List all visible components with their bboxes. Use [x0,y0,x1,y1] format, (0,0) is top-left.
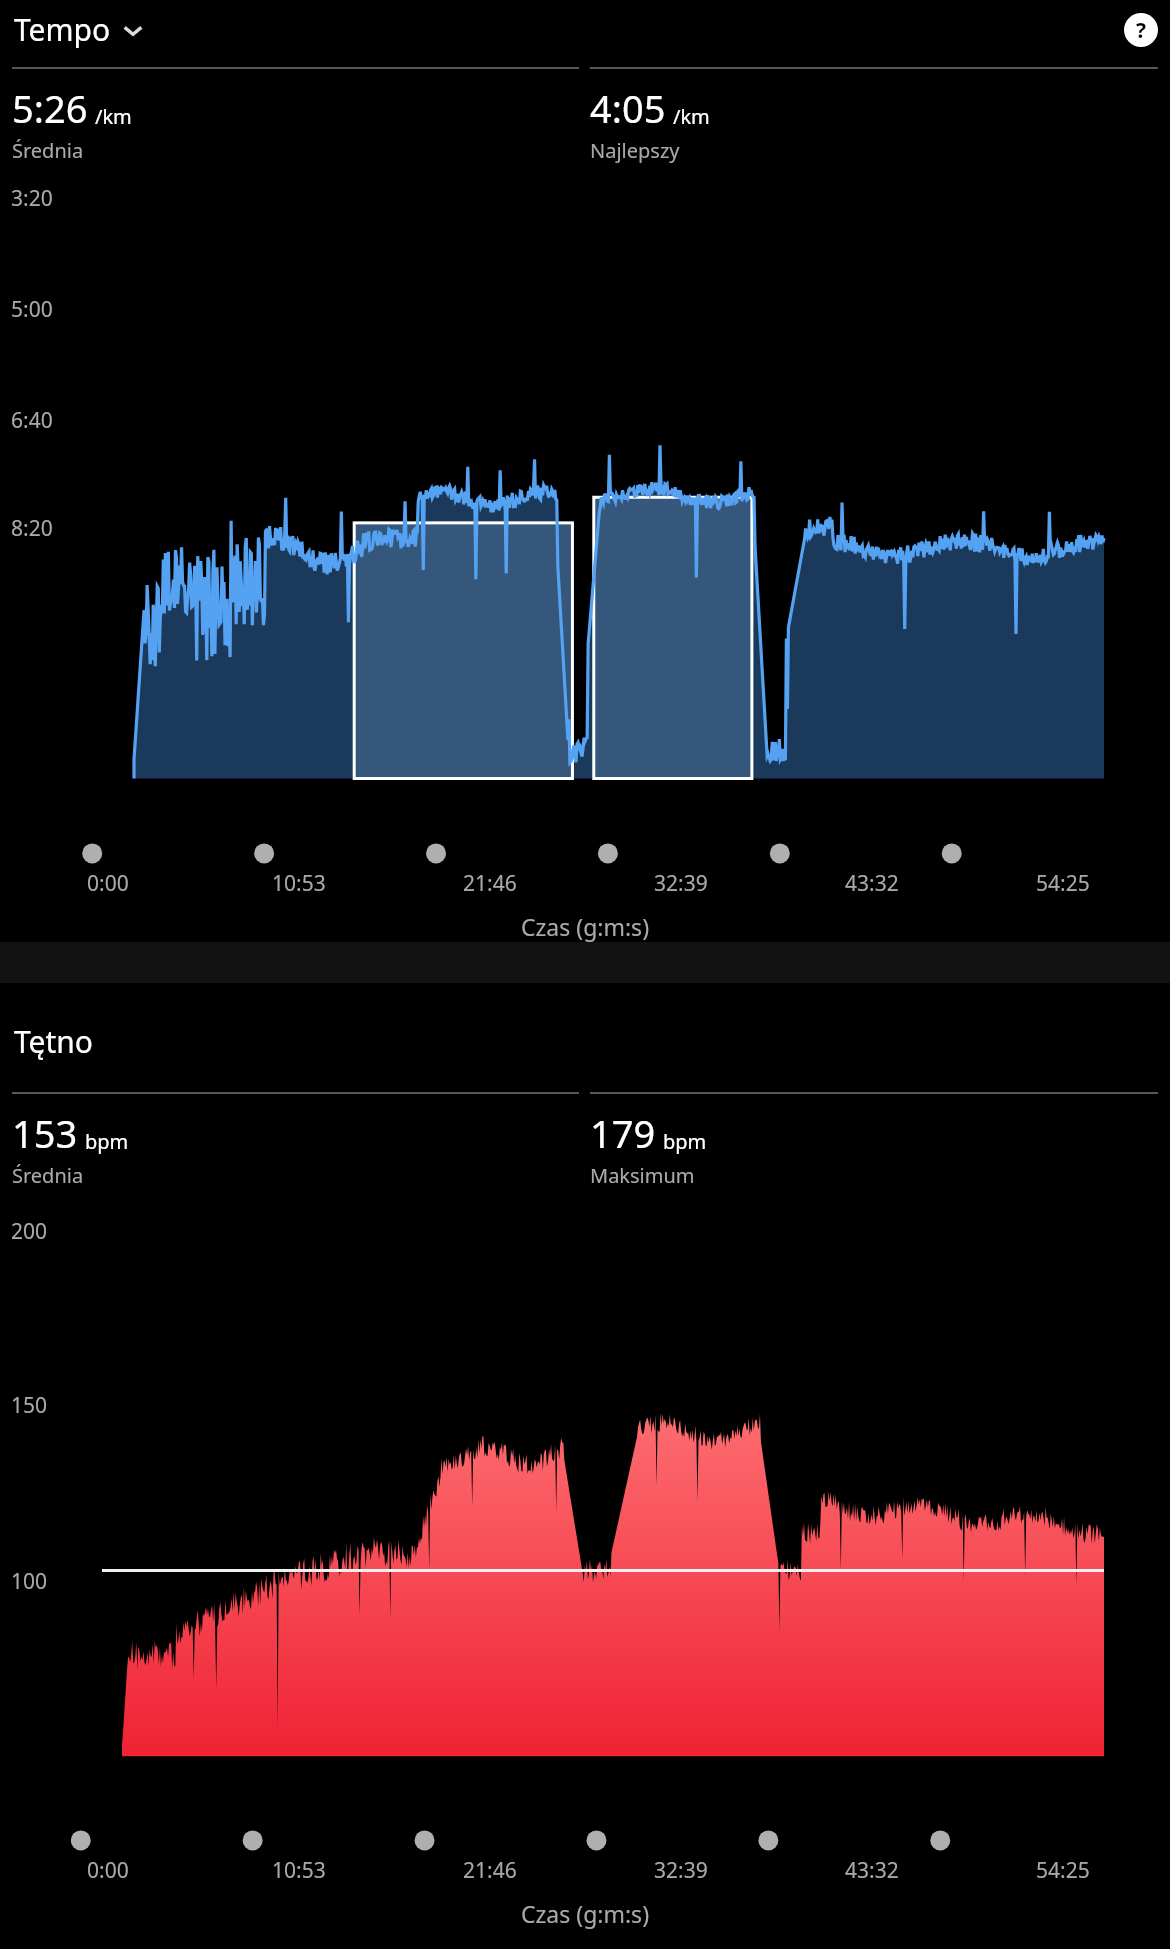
staticText: Najlepszy [590,137,680,164]
staticText: 0:00 [87,1856,129,1885]
staticText: Tętno [14,1021,94,1062]
staticText: /km [673,103,710,130]
staticText: 150 [11,1391,48,1420]
staticText: Czas (g:m:s) [521,911,650,942]
staticText: Maksimum [590,1162,695,1189]
staticText: 54:25 [1036,1856,1090,1885]
staticText: bpm [85,1128,129,1155]
button[interactable]: 179 [590,1092,1158,1189]
staticText: 8:20 [11,514,53,543]
staticText: Czas (g:m:s) [521,1898,650,1929]
staticText: 5:00 [11,295,53,324]
staticText: 200 [11,1217,48,1246]
staticText: 43:32 [845,1856,899,1885]
staticText: 153 [12,1107,78,1159]
staticText: 21:46 [463,869,517,898]
staticText: 6:40 [11,406,53,435]
button[interactable]: 5:26 [12,67,579,164]
staticText: 10:53 [272,869,326,898]
staticText: 32:39 [654,869,708,898]
staticText: 3:20 [11,184,53,213]
button[interactable]: 153 [12,1092,579,1189]
staticText: ? [1136,16,1147,45]
staticText: 21:46 [463,1856,517,1885]
staticText: Średnia [12,1162,84,1189]
staticText: bpm [663,1128,707,1155]
button[interactable]: 4:05 [590,67,1158,164]
staticText: 54:25 [1036,869,1090,898]
staticText: 0:00 [87,869,129,898]
staticText: 43:32 [845,869,899,898]
staticText: Średnia [12,137,84,164]
staticText: 32:39 [654,1856,708,1885]
staticText: 179 [590,1107,656,1159]
staticText: Tempo [14,9,111,50]
staticText: 100 [11,1567,48,1596]
staticText: /km [95,103,132,130]
staticText: 4:05 [590,82,666,134]
button[interactable]: Tempo [10,3,148,56]
staticText: 5:26 [12,82,88,134]
button[interactable]: Pomoc [1124,13,1158,47]
staticText: 10:53 [272,1856,326,1885]
